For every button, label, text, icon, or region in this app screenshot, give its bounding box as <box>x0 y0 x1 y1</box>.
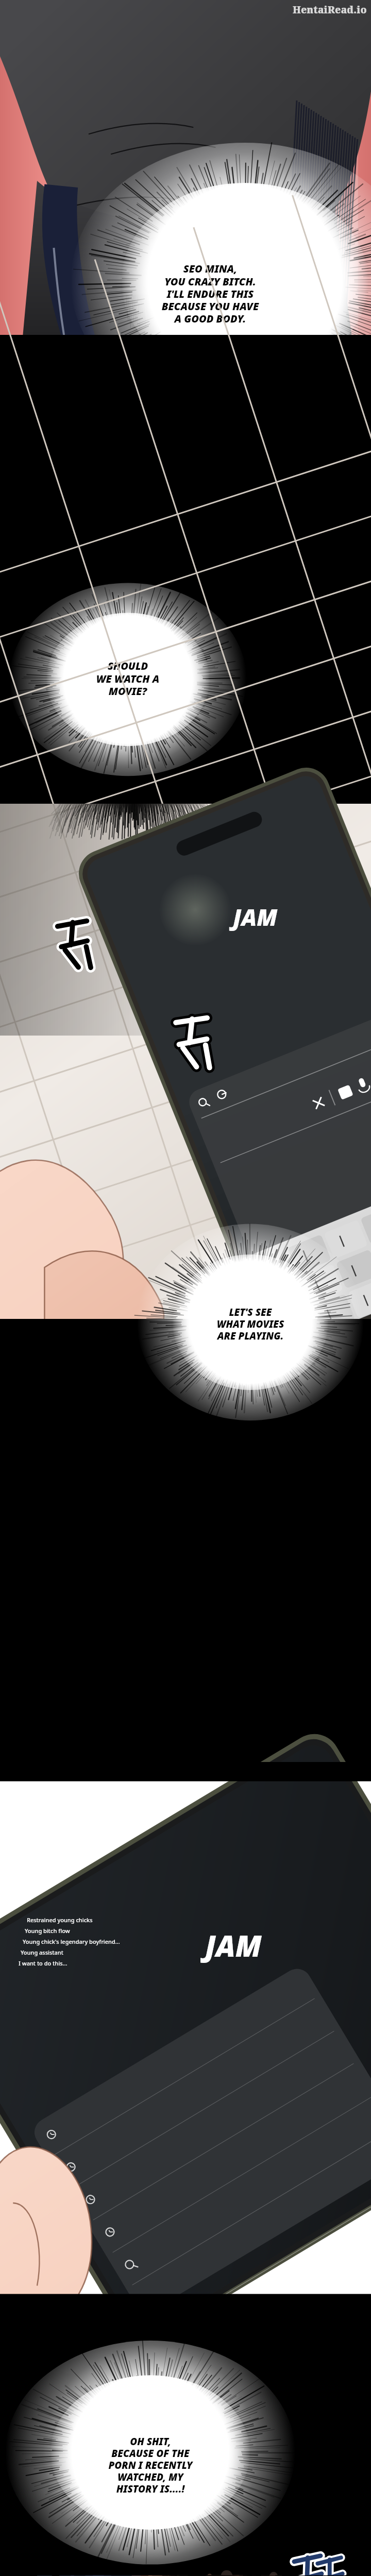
staticText: Restrained young chicks <box>27 1916 93 1924</box>
staticText: Young bitch flow <box>25 1927 70 1935</box>
staticText: HentaiRead.io <box>293 3 367 16</box>
staticText: OH SHIT, BECAUSE OF THE PORN I RECENTLY … <box>78 2435 223 2496</box>
staticText: LET'S SEE WHAT MOVIES ARE PLAYING. <box>191 1306 310 1343</box>
button[interactable]: Restrained young chicks <box>27 1914 197 1969</box>
button[interactable]: OH SHIT, BECAUSE OF THE PORN I RECENTLY … <box>78 2435 223 2496</box>
staticText: I want to do this... <box>19 1959 68 1967</box>
staticText: SEO MINA, YOU CRAZY BITCH. I'LL ENDURE T… <box>133 262 288 326</box>
staticText: JAM <box>233 902 278 933</box>
button[interactable]: LET'S SEE WHAT MOVIES ARE PLAYING. <box>191 1306 310 1343</box>
staticText: Young chick's legendary boyfriend... <box>23 1938 120 1945</box>
staticText: Young assistant <box>21 1948 63 1956</box>
staticText: JAM <box>205 1926 262 1965</box>
button[interactable]: SEO MINA, YOU CRAZY BITCH. I'LL ENDURE T… <box>133 262 288 326</box>
button[interactable]: SHOULD WE WATCH A MOVIE? <box>69 659 187 698</box>
staticText: SHOULD WE WATCH A MOVIE? <box>69 659 187 698</box>
